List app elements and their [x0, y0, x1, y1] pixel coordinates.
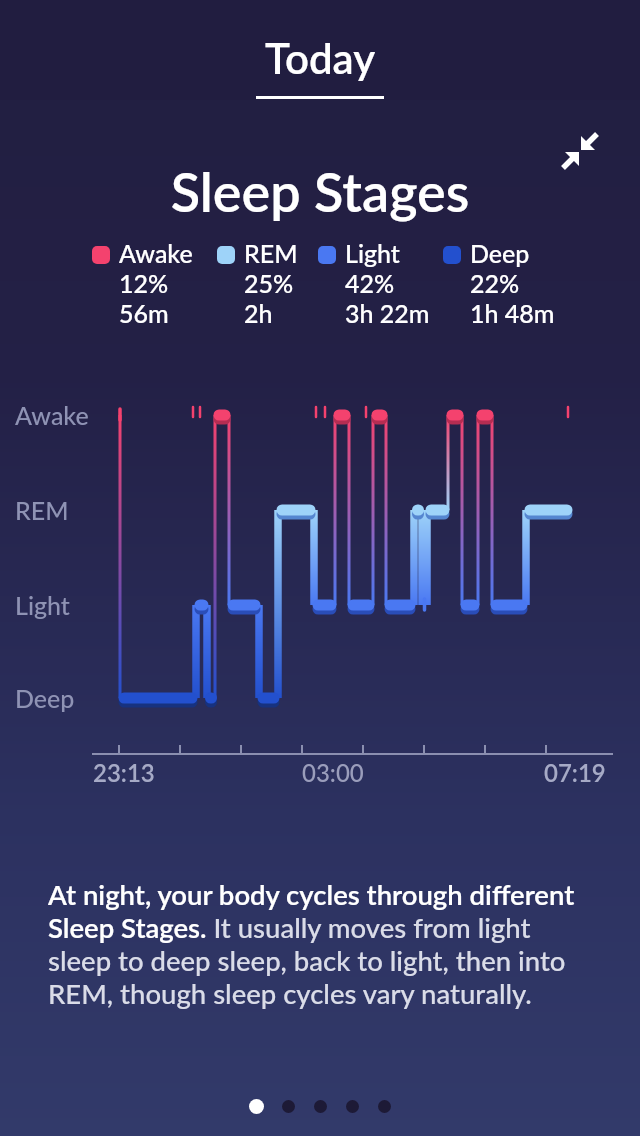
staticText: 3h 22m — [345, 298, 430, 328]
staticText: REM — [244, 238, 298, 268]
staticText: Deep — [15, 683, 75, 713]
button[interactable] — [240, 1098, 272, 1114]
staticText: 42% — [345, 268, 395, 298]
button[interactable]: Today — [256, 0, 384, 99]
staticText: Light — [15, 590, 70, 620]
staticText: Light — [345, 238, 400, 268]
staticText: REM — [15, 495, 69, 525]
staticText: REM, though sleep cycles vary naturally. — [48, 977, 532, 1010]
button[interactable] — [368, 1098, 400, 1114]
staticText: 2h — [244, 298, 273, 328]
button[interactable] — [304, 1098, 336, 1114]
staticText: Sleep Stages. It usually moves from ligh… — [48, 911, 531, 944]
button[interactable] — [556, 126, 604, 174]
staticText: 07:19 — [544, 758, 606, 787]
staticText: 12% — [119, 268, 169, 298]
button[interactable] — [336, 1098, 368, 1114]
button[interactable] — [272, 1098, 304, 1114]
staticText: 03:00 — [302, 758, 364, 787]
staticText: 23:13 — [93, 758, 155, 787]
staticText: Today — [265, 33, 376, 83]
staticText: Awake — [119, 238, 193, 268]
staticText: Sleep Stages — [0, 159, 640, 224]
staticText: 22% — [470, 268, 520, 298]
staticText: sleep to deep sleep, back to light, then… — [48, 944, 566, 977]
staticText: 56m — [119, 298, 169, 328]
staticText: 25% — [244, 268, 294, 298]
staticText: Deep — [470, 238, 530, 268]
staticText: Awake — [15, 400, 89, 430]
staticText: At night, your body cycles through diffe… — [48, 878, 575, 911]
staticText: 1h 48m — [470, 298, 555, 328]
